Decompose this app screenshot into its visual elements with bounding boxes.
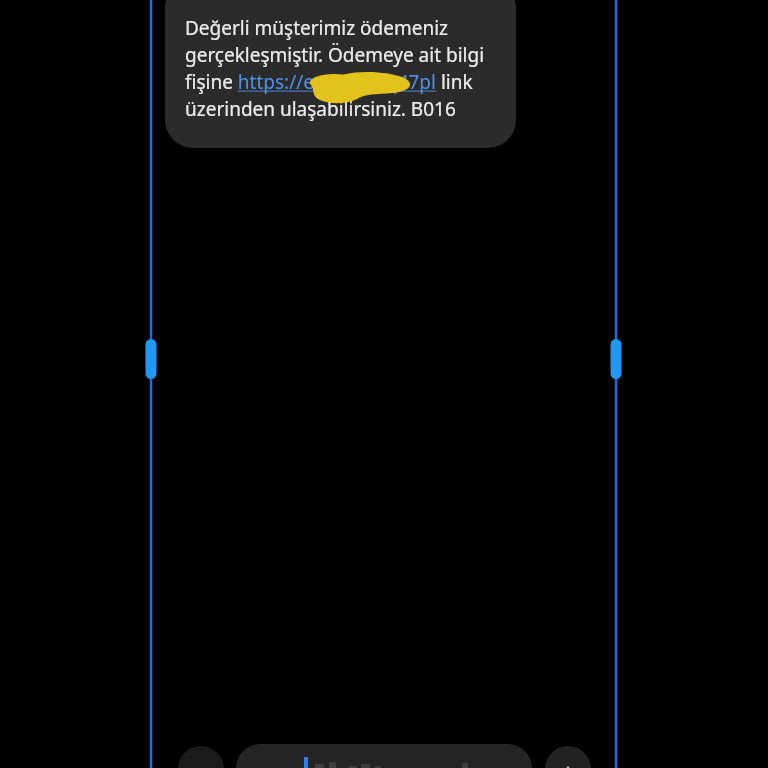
button[interactable]	[236, 744, 532, 768]
button[interactable]: Send	[545, 746, 591, 768]
button[interactable]: Add attachment	[178, 746, 224, 768]
staticText: Değerli müşterimiz ödemeniz gerçekleşmiş…	[185, 15, 500, 122]
button[interactable]	[165, 0, 516, 148]
